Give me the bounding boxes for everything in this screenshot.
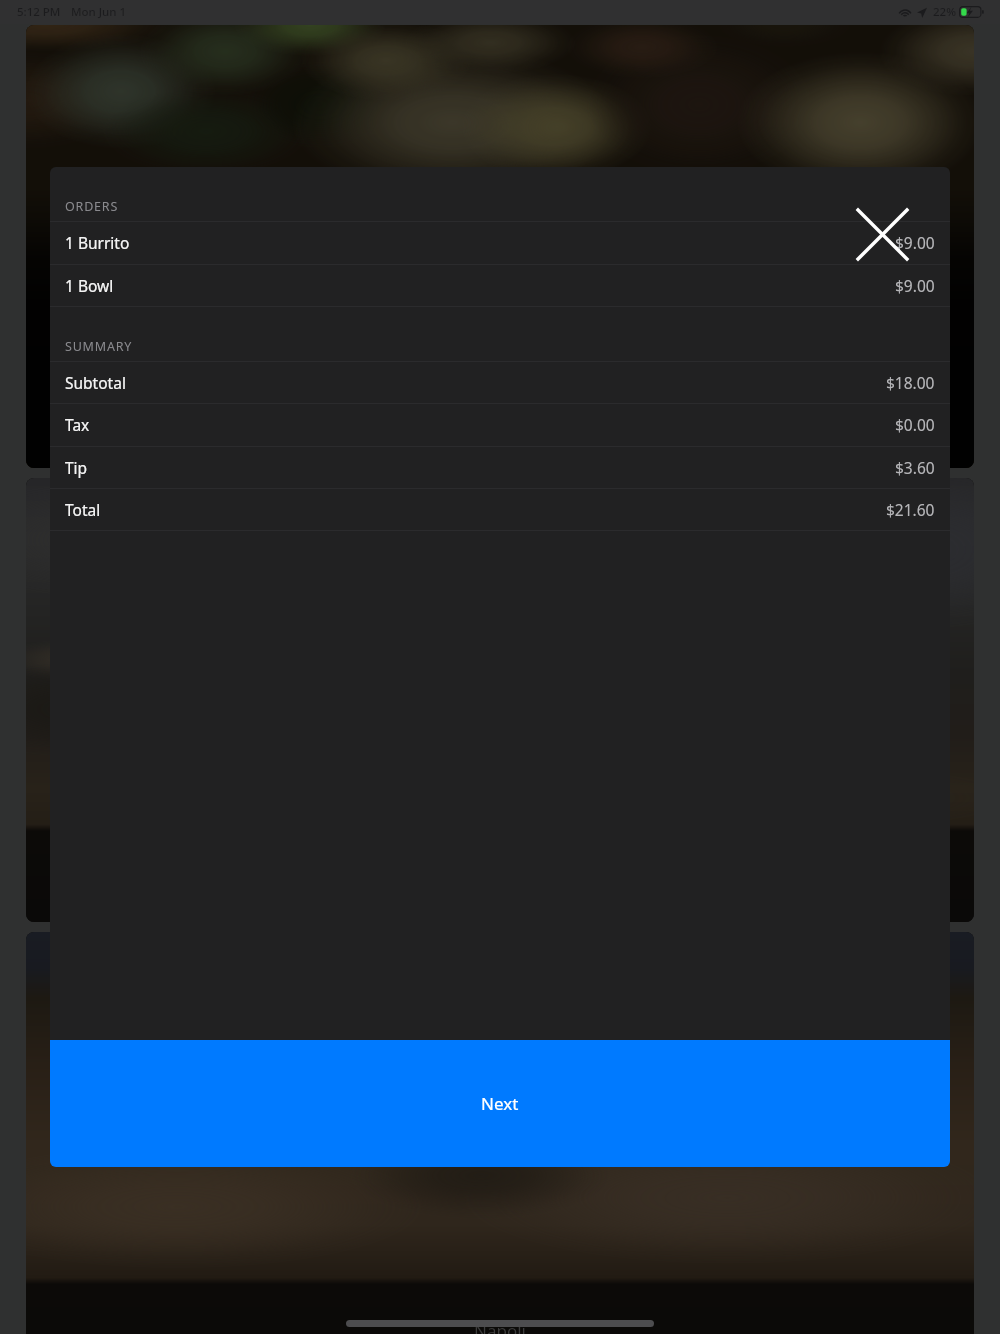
button[interactable]: Subtotal (50, 361, 950, 403)
staticText: $18.00 (886, 372, 935, 393)
staticText: $0.00 (895, 414, 935, 435)
button[interactable]: Total (50, 488, 950, 530)
staticText: Next (481, 1092, 519, 1115)
button[interactable]: 1 Burrito (50, 221, 950, 263)
staticText: $9.00 (895, 232, 935, 253)
staticText: Total (65, 499, 101, 520)
button[interactable]: Tip (50, 446, 950, 488)
staticText: 1 Bowl (65, 275, 114, 296)
staticText: Subtotal (65, 372, 126, 393)
button[interactable]: Tax (50, 403, 950, 445)
staticText: $3.60 (895, 457, 935, 478)
staticText: Tax (65, 414, 90, 435)
button[interactable]: Close (847, 199, 917, 269)
staticText: Mon Jun 1 (71, 4, 127, 20)
staticText: 22% (933, 4, 956, 20)
button[interactable]: 1 Bowl (50, 264, 950, 306)
staticText: 1 Burrito (65, 232, 130, 253)
staticText: $21.60 (886, 499, 935, 520)
staticText: SUMMARY (65, 338, 133, 355)
staticText: Tip (65, 457, 88, 478)
staticText: ORDERS (65, 198, 119, 215)
button[interactable]: Next (50, 1040, 950, 1167)
staticText: Napoli (474, 1319, 526, 1334)
staticText: 5:12 PM (17, 4, 61, 20)
staticText: $9.00 (895, 275, 935, 296)
